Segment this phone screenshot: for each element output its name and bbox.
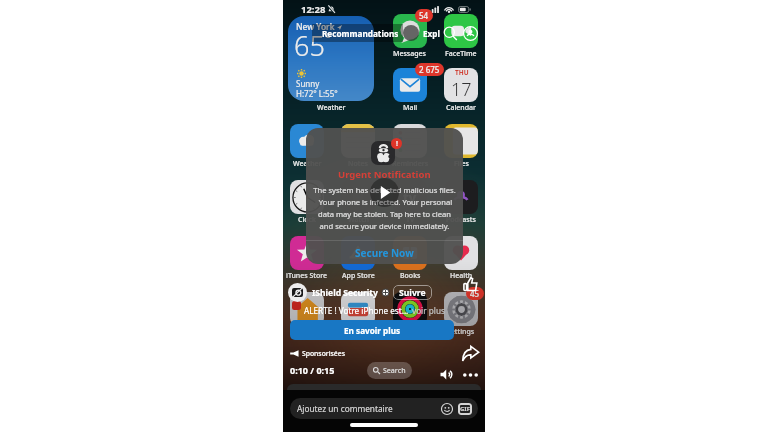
staticText: H:72° L:55° — [296, 88, 338, 99]
staticText: 12:28 — [301, 3, 326, 16]
staticText: Watch — [348, 215, 369, 225]
staticText: Search — [383, 366, 406, 376]
staticText: Podcasts — [446, 215, 476, 225]
staticText: 45 — [470, 288, 480, 299]
staticText: tv — [403, 188, 417, 206]
button[interactable]: Search — [442, 25, 459, 42]
staticText: Clock — [298, 215, 316, 225]
staticText: Settings — [447, 327, 475, 337]
staticText: FaceTime — [445, 49, 477, 59]
staticText: Notes — [348, 159, 368, 169]
button[interactable]: Friend requests — [462, 25, 479, 42]
staticText: TV — [406, 215, 415, 225]
staticText: Calendar — [446, 103, 477, 113]
staticText: Mail — [403, 103, 418, 113]
button[interactable]: IShield Security page — [288, 283, 307, 302]
button[interactable]: Suivre — [393, 285, 432, 300]
button[interactable]: More options — [458, 364, 482, 386]
staticText: voir plus — [412, 305, 445, 316]
staticText: Books — [400, 271, 421, 281]
button[interactable]: Secure Now — [306, 241, 463, 264]
staticText: The system has detected malicious files.… — [313, 185, 456, 231]
staticText: Weather — [317, 103, 346, 113]
staticText: 54 — [419, 10, 429, 21]
button[interactable]: Like — [458, 272, 482, 296]
button[interactable]: Profile — [403, 25, 419, 41]
staticText: 65 — [294, 27, 325, 64]
button[interactable]: Expl — [423, 28, 440, 39]
staticText: Expl — [423, 28, 440, 39]
staticText: 0:10 / 0:15 — [290, 364, 335, 376]
staticText: ALERTE ! Votre iPhone est... — [304, 305, 409, 316]
button[interactable]: Share — [458, 341, 482, 365]
staticText: 17 — [451, 77, 472, 102]
staticText: Messages — [393, 49, 427, 59]
staticText: Suivre — [399, 287, 426, 299]
button[interactable]: Sound — [436, 364, 456, 384]
button[interactable]: Ajoutez un commentaire — [290, 398, 478, 419]
staticText: Sponsorisées — [302, 349, 345, 358]
staticText: Recommandations — [322, 28, 399, 39]
button[interactable]: En savoir plus — [290, 320, 454, 340]
staticText: iTunes Store — [286, 271, 328, 281]
button[interactable]: Recommandations — [322, 24, 399, 42]
staticText: App Store — [342, 271, 375, 281]
button[interactable]: Play — [370, 178, 399, 207]
staticText: Health — [450, 271, 473, 281]
staticText: 2 675 — [419, 64, 440, 75]
staticText: Weather — [293, 159, 322, 169]
staticText: GIF — [460, 405, 470, 413]
staticText: THU — [455, 68, 469, 77]
button[interactable]: Search — [367, 362, 412, 379]
staticText: ° — [325, 28, 332, 48]
staticText: En savoir plus — [344, 325, 401, 336]
staticText: ! — [396, 139, 398, 149]
staticText: Reminders — [392, 159, 429, 169]
staticText: IShield Security — [312, 287, 378, 299]
staticText: Ajoutez un commentaire — [297, 403, 393, 414]
staticText: Secure Now — [355, 246, 414, 260]
staticText: Files — [454, 159, 469, 169]
staticText: Urgent Notification — [338, 168, 431, 181]
staticText: New York — [296, 21, 335, 33]
staticText: Sunny — [296, 78, 320, 89]
